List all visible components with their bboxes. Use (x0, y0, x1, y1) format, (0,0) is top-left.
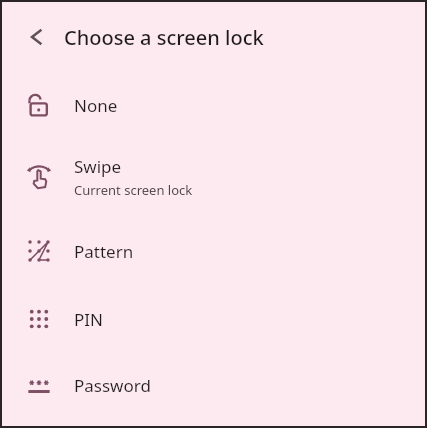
button[interactable]: None (2, 72, 425, 138)
staticText: Choose a screen lock (64, 24, 264, 51)
staticText: Pattern (74, 240, 134, 263)
staticText: PIN (74, 308, 103, 331)
staticText: Password (74, 374, 151, 397)
button[interactable]: Pattern (2, 216, 425, 286)
button[interactable]: Password (2, 352, 425, 418)
staticText: Swipe (74, 155, 122, 178)
button[interactable]: Back (16, 17, 56, 57)
staticText: None (74, 94, 118, 117)
staticText: Current screen lock (74, 181, 193, 199)
button[interactable]: PIN (2, 286, 425, 352)
button[interactable]: Swipe (2, 138, 425, 216)
